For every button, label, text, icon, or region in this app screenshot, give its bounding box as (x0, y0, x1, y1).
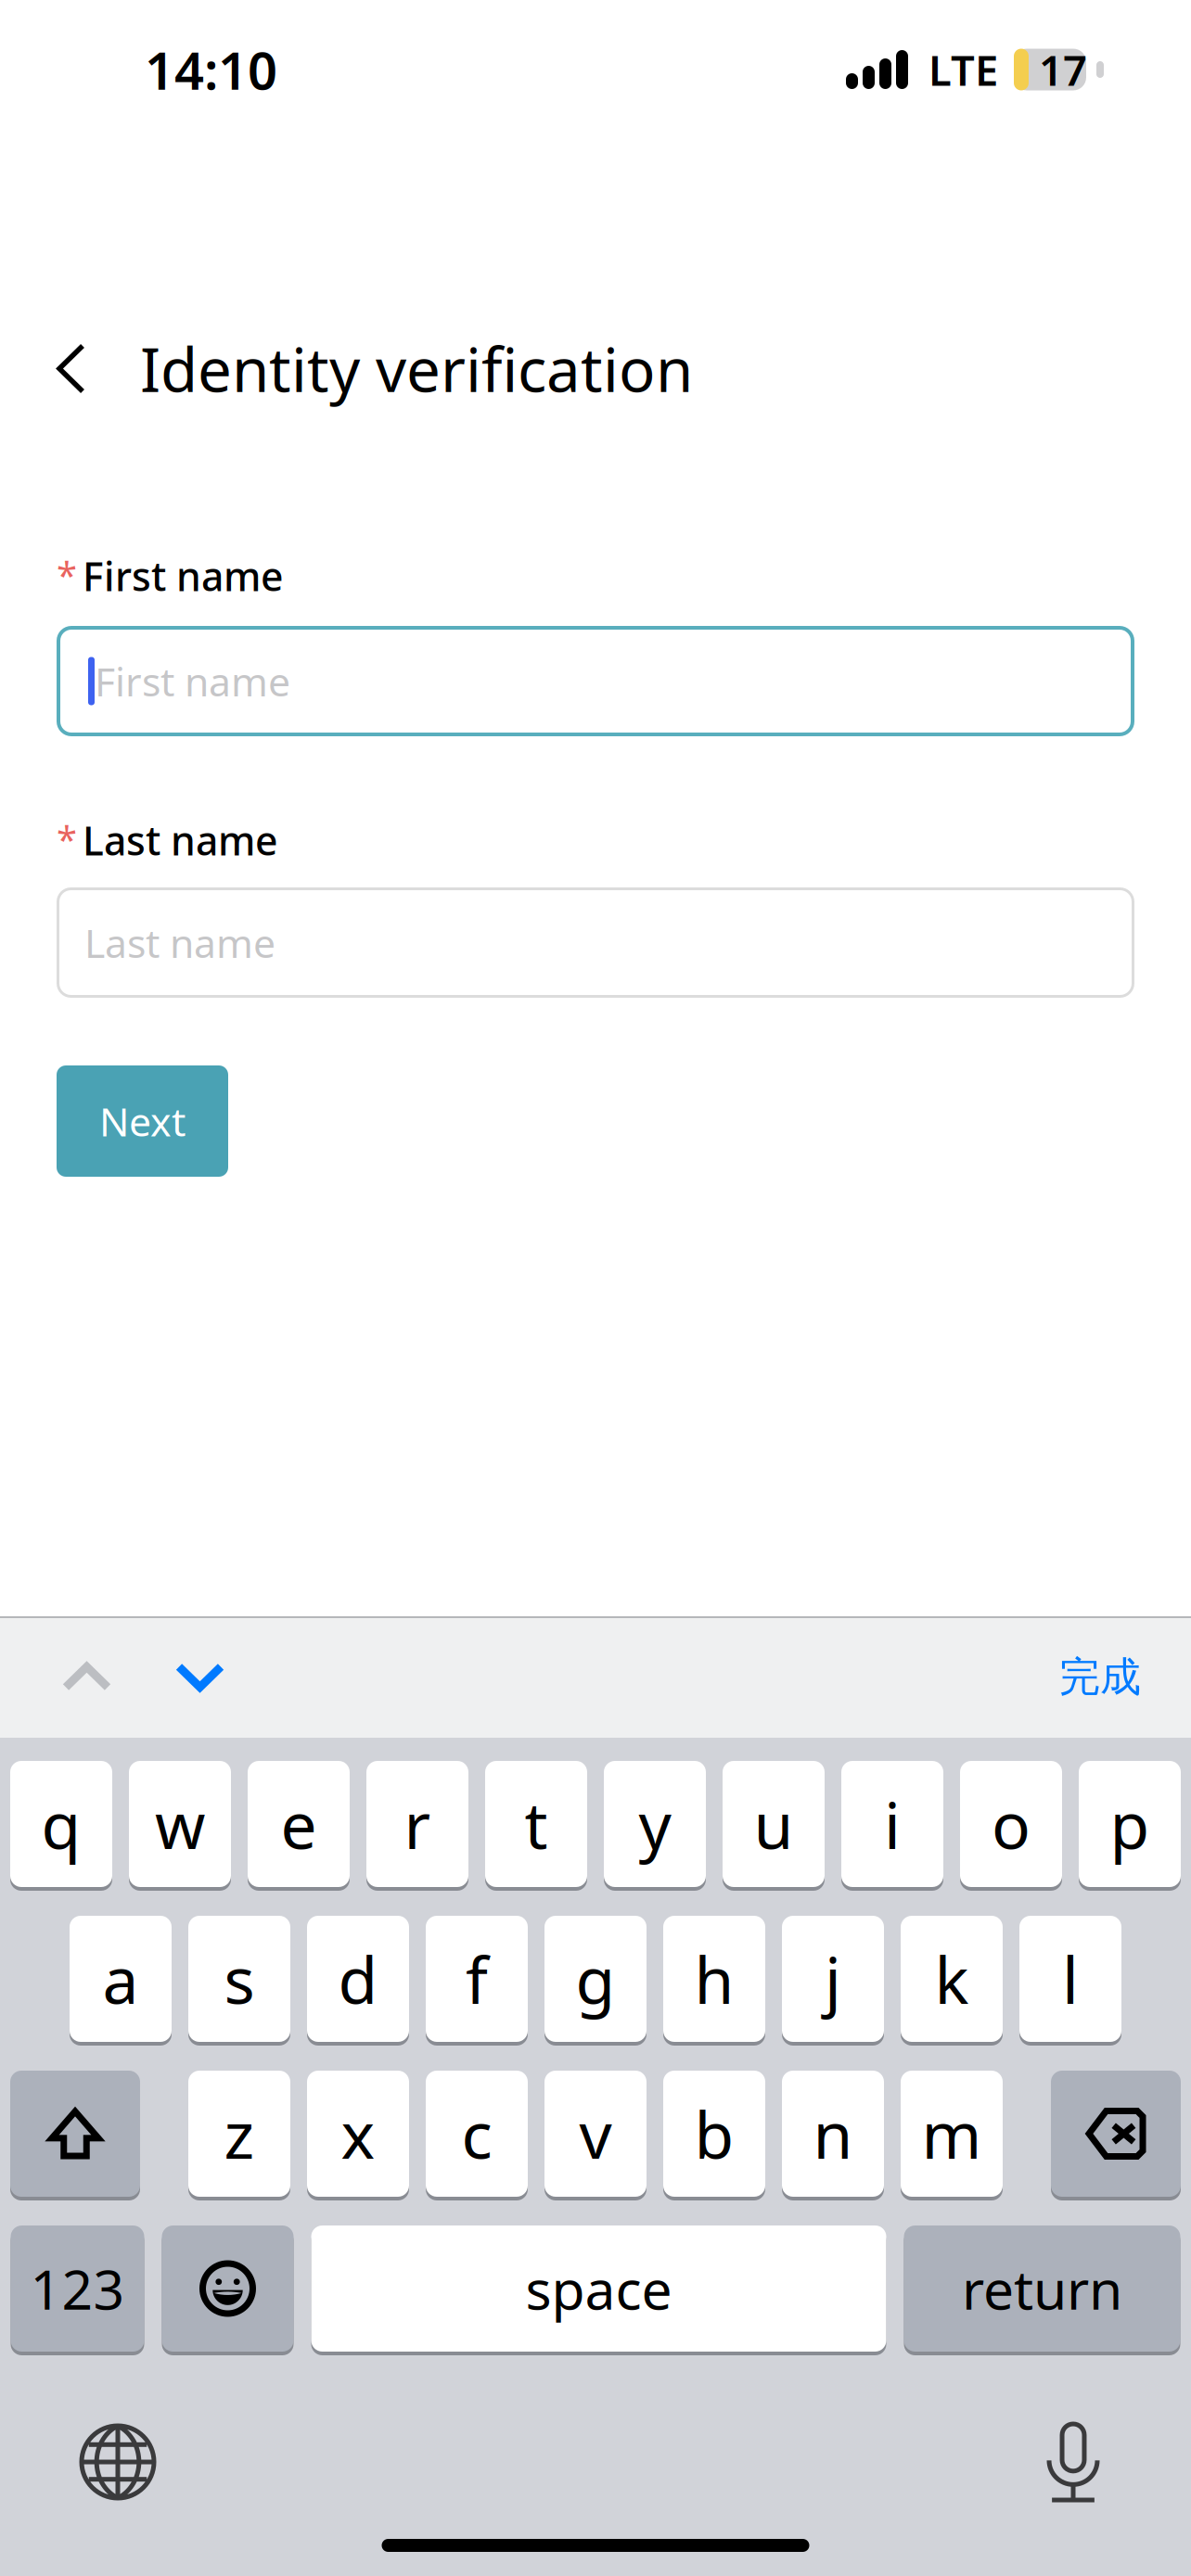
staticText: 17 (1039, 42, 1087, 97)
button[interactable]: g (544, 1916, 647, 2042)
staticText: 123 (30, 2252, 125, 2325)
button[interactable]: n (782, 2071, 884, 2197)
button[interactable]: 123 (11, 2225, 144, 2352)
staticText: Identity verification (140, 328, 693, 409)
staticText: LTE (928, 42, 998, 97)
button[interactable]: q (10, 1761, 112, 1887)
button[interactable]: w (129, 1761, 231, 1887)
staticText: o (992, 1781, 1031, 1867)
staticText: 14:10 (145, 35, 277, 104)
button[interactable]: Next field (138, 1616, 251, 1738)
staticText: return (962, 2252, 1122, 2325)
button[interactable]: p (1079, 1761, 1181, 1887)
staticText: x (341, 2091, 375, 2176)
button[interactable]: Back (0, 323, 140, 414)
button[interactable]: First name (57, 626, 1134, 736)
button[interactable]: x (307, 2071, 409, 2197)
button[interactable]: s (188, 1916, 290, 2042)
staticText: j (825, 1936, 841, 2022)
staticText: u (754, 1781, 794, 1867)
staticText: Last name (84, 916, 275, 969)
staticText: Last name (83, 814, 277, 866)
staticText: h (694, 1936, 734, 2022)
button[interactable]: z (188, 2071, 290, 2197)
staticText: c (461, 2091, 492, 2176)
button[interactable]: return (904, 2225, 1180, 2352)
staticText: e (281, 1781, 317, 1867)
button[interactable]: Shift (10, 2071, 140, 2197)
button[interactable]: space (311, 2225, 886, 2352)
staticText: l (1062, 1936, 1079, 2022)
button[interactable]: t (485, 1761, 587, 1887)
button[interactable]: h (663, 1916, 765, 2042)
button[interactable]: u (723, 1761, 825, 1887)
button[interactable]: Emoji (162, 2225, 294, 2352)
button[interactable]: m (901, 2071, 1003, 2197)
staticText: t (525, 1781, 548, 1867)
staticText: a (102, 1936, 139, 2022)
staticText: * (57, 550, 77, 599)
button[interactable]: i (841, 1761, 943, 1887)
staticText: b (694, 2091, 734, 2176)
button[interactable]: k (901, 1916, 1003, 2042)
staticText: f (466, 1936, 488, 2022)
staticText: m (922, 2091, 982, 2176)
button[interactable]: v (544, 2071, 647, 2197)
button[interactable]: Next (57, 1065, 228, 1177)
staticText: k (935, 1936, 969, 2022)
button[interactable]: Dictate (1018, 2407, 1128, 2517)
staticText: w (155, 1781, 205, 1867)
button[interactable]: b (663, 2071, 765, 2197)
staticText: z (224, 2091, 255, 2176)
staticText: s (224, 1936, 255, 2022)
button[interactable]: f (426, 1916, 528, 2042)
staticText: n (813, 2091, 853, 2176)
staticText: Next (99, 1095, 186, 1147)
staticText: First name (95, 655, 290, 707)
staticText: * (57, 814, 77, 863)
button[interactable]: y (604, 1761, 706, 1887)
staticText: i (884, 1781, 901, 1867)
staticText: g (576, 1936, 615, 2022)
staticText: 完成 (1059, 1652, 1141, 1702)
staticText: r (404, 1781, 431, 1867)
button[interactable]: Delete (1051, 2071, 1181, 2197)
staticText: d (338, 1936, 378, 2022)
button[interactable]: a (70, 1916, 172, 2042)
staticText: q (41, 1781, 81, 1867)
button[interactable]: c (426, 2071, 528, 2197)
staticText: v (579, 2091, 612, 2176)
button[interactable]: d (307, 1916, 409, 2042)
button[interactable]: 完成 (1031, 1610, 1169, 1744)
staticText: First name (83, 550, 283, 602)
button[interactable]: o (960, 1761, 1062, 1887)
staticText: space (525, 2252, 672, 2325)
button[interactable]: Previous field (35, 1616, 138, 1738)
button[interactable]: r (366, 1761, 468, 1887)
button[interactable]: Change keyboard (63, 2407, 173, 2517)
staticText: y (639, 1781, 671, 1867)
button[interactable]: l (1019, 1916, 1121, 2042)
button[interactable]: e (248, 1761, 350, 1887)
staticText: p (1110, 1781, 1150, 1867)
button[interactable]: Last name (57, 887, 1134, 998)
button[interactable]: j (782, 1916, 884, 2042)
